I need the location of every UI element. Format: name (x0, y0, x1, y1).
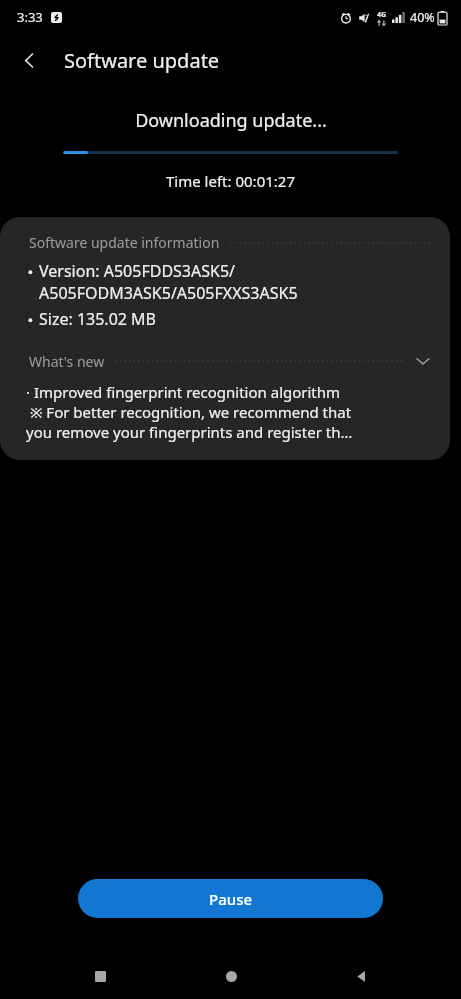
staticText: Time left: 00:01:27 (166, 171, 295, 191)
staticText: Pause (209, 889, 253, 909)
staticText: Size: 135.02 MB (39, 308, 157, 330)
button[interactable]: What's new (0, 350, 450, 372)
staticText: ※ For better recognition, we recommend t… (26, 402, 352, 422)
staticText: · Improved fingerprint recognition algor… (26, 382, 341, 402)
staticText: 3:33 (17, 8, 43, 26)
staticText: Version: A505FDDS3ASK5/ (39, 260, 236, 282)
staticText: Downloading update... (135, 108, 327, 133)
button[interactable]: Recent apps (78, 954, 122, 998)
button[interactable]: Back (339, 954, 383, 998)
button[interactable]: Back (6, 37, 52, 83)
staticText: 40% (410, 9, 435, 26)
staticText: A505FODM3ASK5/A505FXXS3ASK5 (39, 282, 298, 304)
staticText: 4G (377, 10, 387, 20)
other: Expand what's new (412, 350, 434, 372)
staticText: What's new (29, 352, 105, 371)
button[interactable]: Home (209, 954, 253, 998)
button[interactable]: Pause (78, 879, 383, 918)
staticText: you remove your fingerprints and registe… (26, 422, 353, 442)
staticText: Software update (64, 47, 220, 74)
staticText: Software update information (29, 233, 220, 252)
